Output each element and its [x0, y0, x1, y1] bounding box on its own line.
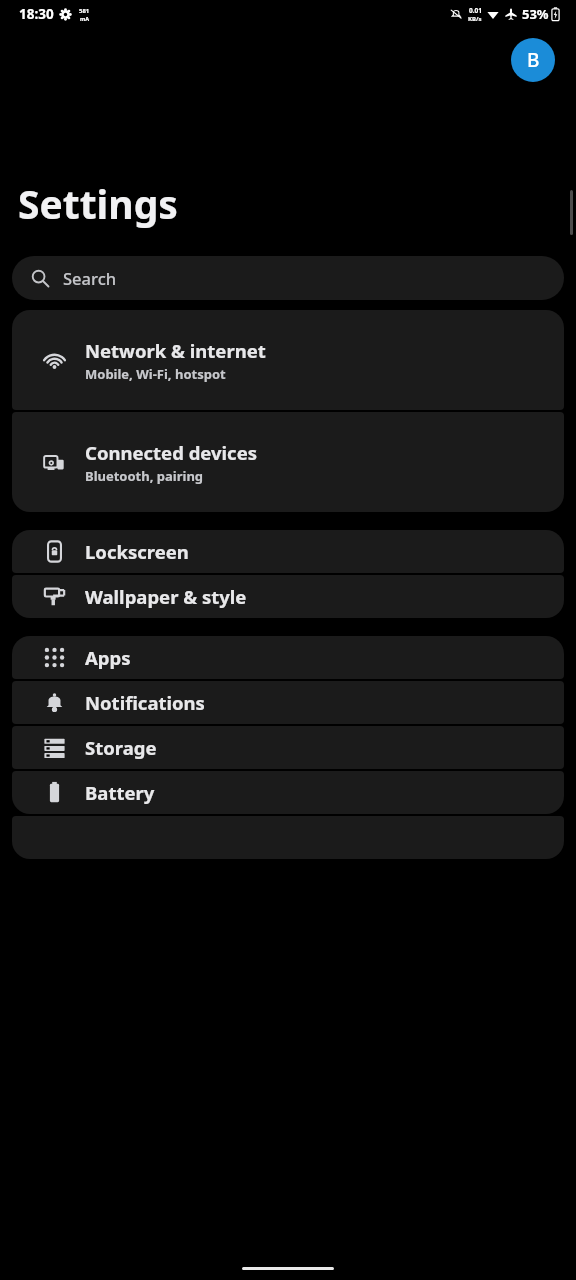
button[interactable]: Storage [12, 726, 564, 769]
staticText: KB/s [468, 15, 482, 23]
button[interactable]: Apps [12, 636, 564, 679]
button[interactable]: Lockscreen [12, 530, 564, 573]
button[interactable]: Network & internet [12, 310, 564, 410]
button[interactable]: Notifications [12, 681, 564, 724]
staticText: Network & internet [85, 338, 266, 363]
staticText: Storage [85, 735, 157, 760]
staticText: Battery [85, 780, 155, 805]
staticText: 53% [522, 5, 549, 23]
staticText: Apps [85, 645, 131, 670]
staticText: Connected devices [85, 440, 257, 465]
staticText: Notifications [85, 690, 205, 715]
staticText: mA [80, 15, 90, 22]
staticText: B [527, 47, 540, 73]
staticText: Lockscreen [85, 539, 189, 564]
staticText: 0.01 [469, 6, 482, 15]
button[interactable]: Account [511, 38, 555, 82]
staticText: Bluetooth, pairing [85, 467, 204, 485]
button[interactable]: Search [12, 256, 564, 300]
button[interactable]: Connected devices [12, 412, 564, 512]
staticText: Mobile, Wi-Fi, hotspot [85, 365, 226, 383]
staticText: Search [63, 267, 117, 289]
button[interactable]: Battery [12, 771, 564, 814]
staticText: Wallpaper & style [85, 584, 247, 609]
staticText: 18:30 [19, 5, 54, 23]
staticText: 581 [79, 7, 90, 15]
staticText: Settings [18, 177, 178, 230]
button[interactable]: Wallpaper & style [12, 575, 564, 618]
